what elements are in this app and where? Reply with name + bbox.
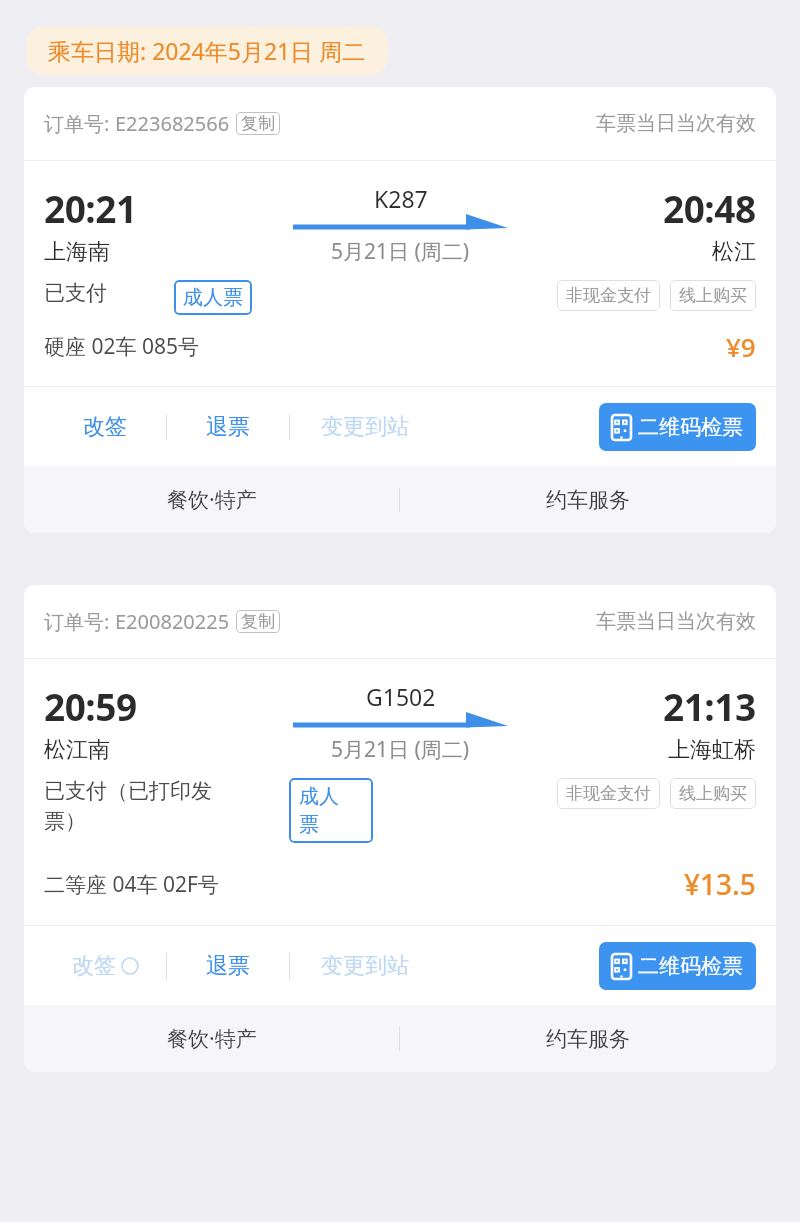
staticText: 订单号: <box>44 608 115 635</box>
staticText: K287 <box>374 183 428 214</box>
button[interactable]: 复制 <box>241 113 275 134</box>
staticText: 非现金支付 <box>566 285 651 306</box>
button[interactable]: 改签 <box>44 926 166 1005</box>
staticText: 非现金支付 <box>566 783 651 804</box>
staticText: 改签 <box>83 413 127 441</box>
button[interactable]: 餐饮·特产 <box>24 485 399 514</box>
staticText: 成人票 <box>183 285 243 310</box>
button[interactable]: 成人票 <box>183 285 243 310</box>
button[interactable]: 退票 <box>167 926 289 1005</box>
staticText: 线上购买 <box>679 783 747 804</box>
staticText: 5月21日 (周二) <box>331 237 470 266</box>
staticText: 变更到站 <box>321 952 409 980</box>
button[interactable]: 线上购买 <box>679 285 747 306</box>
staticText: ¥13.5 <box>684 865 756 903</box>
staticText: 变更到站 <box>321 413 409 441</box>
button[interactable]: 二维码检票 <box>612 953 743 979</box>
button[interactable]: 变更到站 <box>290 926 440 1005</box>
staticText: E200820225 <box>115 608 230 635</box>
staticText: 松江 <box>712 238 756 266</box>
staticText: 车票当日当次有效 <box>596 609 756 634</box>
staticText: 订单号: <box>44 110 115 137</box>
staticText: 线上购买 <box>679 285 747 306</box>
button[interactable]: 约车服务 <box>400 1026 776 1052</box>
staticText: 已支付 <box>44 280 107 306</box>
staticText: 复制 <box>241 611 275 632</box>
staticText: 20:21 <box>44 183 137 233</box>
button[interactable]: 非现金支付 <box>566 285 651 306</box>
button[interactable]: 非现金支付 <box>566 783 651 804</box>
button[interactable]: 变更到站 <box>290 387 440 466</box>
staticText: 21:13 <box>663 681 756 731</box>
button[interactable]: 成人 票 <box>299 784 363 837</box>
staticText: 退票 <box>206 952 250 980</box>
staticText: 餐饮·特产 <box>167 485 257 514</box>
button[interactable]: 复制 <box>241 611 275 632</box>
staticText: 约车服务 <box>546 1026 630 1052</box>
staticText: 退票 <box>206 413 250 441</box>
staticText: E223682566 <box>115 110 230 137</box>
staticText: 改签 <box>72 952 116 980</box>
staticText: 硬座 02车 085号 <box>44 332 199 361</box>
staticText: 约车服务 <box>546 487 630 513</box>
staticText: 5月21日 (周二) <box>331 735 470 764</box>
staticText: G1502 <box>366 681 436 712</box>
staticText: 乘车日期: 2024年5月21日 周二 <box>48 35 366 66</box>
staticText: 成人 票 <box>299 784 339 837</box>
staticText: 上海南 <box>44 238 110 266</box>
staticText: 20:48 <box>663 183 756 233</box>
staticText: 餐饮·特产 <box>167 1024 257 1053</box>
staticText: ¥9 <box>726 329 756 364</box>
button[interactable]: 乘车日期: 2024年5月21日 周二 <box>48 35 366 66</box>
button[interactable]: 线上购买 <box>679 783 747 804</box>
staticText: 复制 <box>241 113 275 134</box>
button[interactable]: 餐饮·特产 <box>24 1024 399 1053</box>
staticText: 松江南 <box>44 736 110 764</box>
staticText: 二维码检票 <box>638 414 743 440</box>
staticText: 二等座 04车 02F号 <box>44 870 219 899</box>
staticText: 车票当日当次有效 <box>596 111 756 136</box>
staticText: 已支付（已打印发 票） <box>44 778 212 835</box>
staticText: 二维码检票 <box>638 953 743 979</box>
button[interactable]: 约车服务 <box>400 487 776 513</box>
staticText: 上海虹桥 <box>668 736 756 764</box>
button[interactable]: 退票 <box>167 387 289 466</box>
staticText: 20:59 <box>44 681 137 731</box>
button[interactable]: 二维码检票 <box>612 414 743 440</box>
button[interactable]: 改签 <box>44 387 166 466</box>
